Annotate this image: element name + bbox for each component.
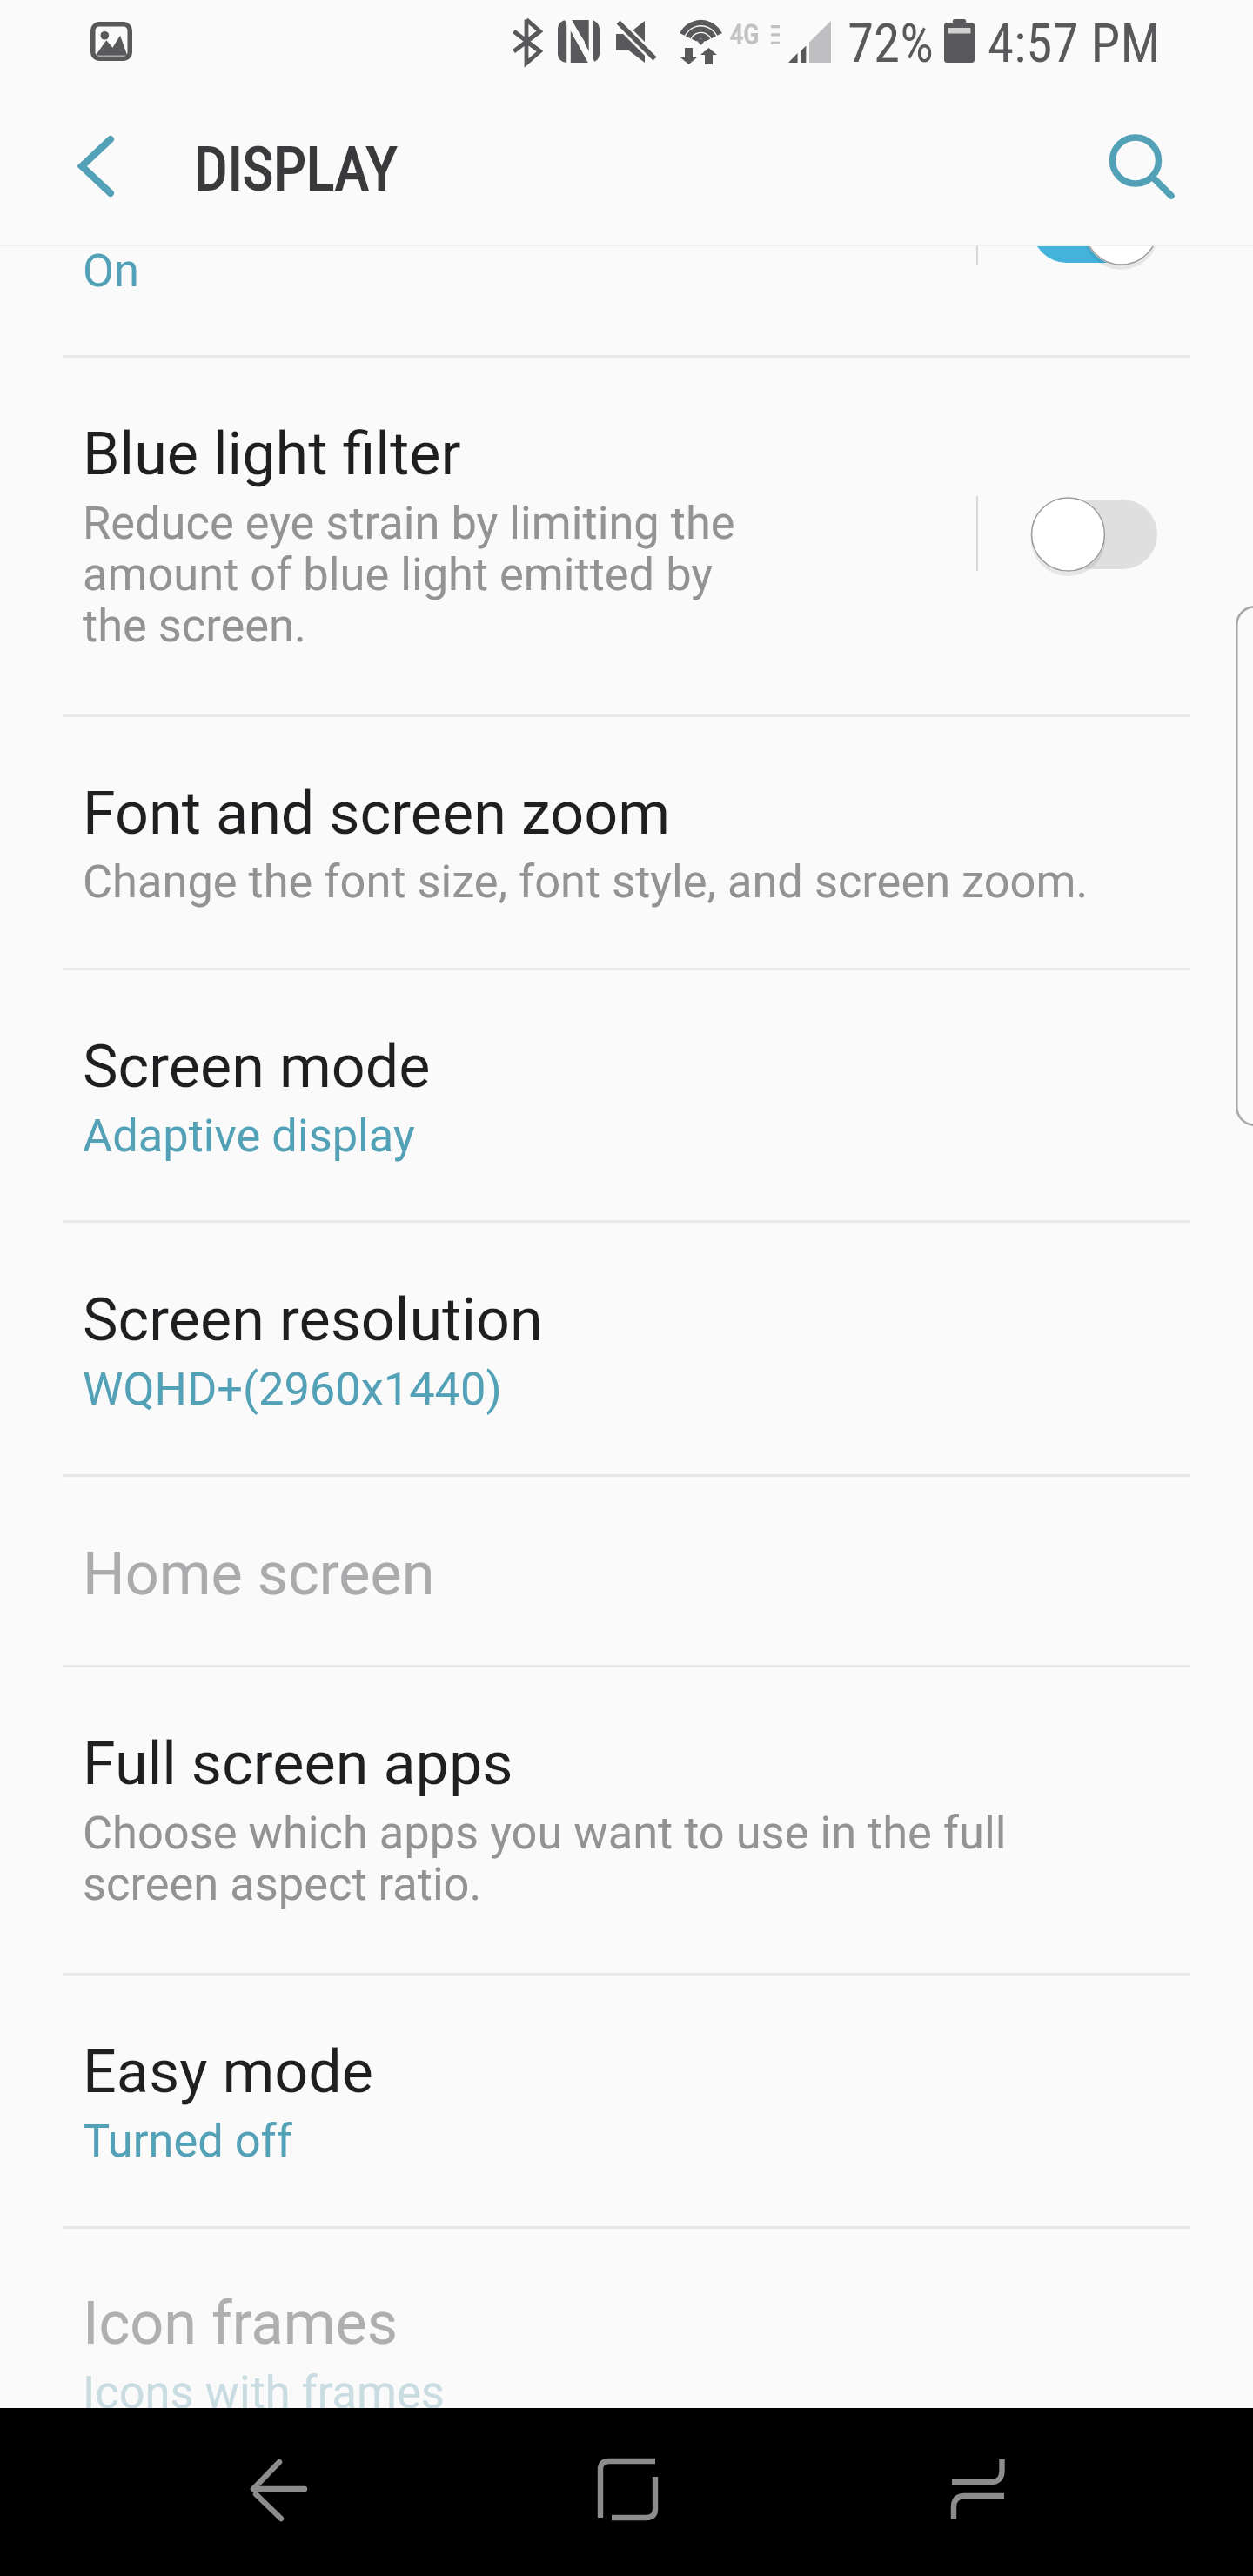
staticText: 4:57 PM xyxy=(988,12,1161,74)
staticText: 4G xyxy=(730,18,760,50)
staticText: Font and screen zoom xyxy=(83,779,671,849)
button[interactable] xyxy=(0,714,1253,968)
staticText: Easy mode xyxy=(83,2037,374,2107)
button[interactable] xyxy=(0,1220,1253,1474)
staticText: Icon frames xyxy=(83,2289,398,2358)
staticText: Turned off xyxy=(83,2114,293,2167)
button[interactable]: Back xyxy=(218,2408,339,2576)
staticText: amount of blue light emitted by xyxy=(83,547,714,600)
staticText: Icons with frames xyxy=(83,2365,445,2418)
button[interactable] xyxy=(0,355,1253,714)
button[interactable] xyxy=(0,2226,1253,2408)
staticText: screen aspect ratio. xyxy=(83,1857,482,1910)
button[interactable]: Recent apps xyxy=(917,2408,1039,2576)
staticText: Change the font size, font style, and sc… xyxy=(83,855,1089,908)
button[interactable] xyxy=(0,246,1253,355)
button[interactable]: Search xyxy=(1088,125,1192,230)
button[interactable] xyxy=(0,1665,1253,1973)
button[interactable] xyxy=(0,968,1253,1220)
staticText: 72% xyxy=(848,12,934,74)
staticText: Adaptive display xyxy=(83,1109,415,1162)
staticText: Screen resolution xyxy=(83,1285,543,1355)
button[interactable]: Blue light filter switch xyxy=(1029,494,1164,574)
staticText: Choose which apps you want to use in the… xyxy=(83,1806,1007,1859)
button[interactable]: Night mode switch xyxy=(1029,188,1164,268)
staticText: Blue light filter xyxy=(83,419,461,489)
button[interactable]: Navigate up xyxy=(40,125,144,230)
staticText: Full screen apps xyxy=(83,1729,513,1799)
staticText: WQHD+(2960x1440) xyxy=(83,1362,502,1415)
staticText: Screen mode xyxy=(83,1032,431,1102)
button[interactable] xyxy=(0,1973,1253,2226)
staticText: the screen. xyxy=(83,599,306,652)
staticText: Home screen xyxy=(83,1540,435,1609)
staticText: On xyxy=(83,244,139,297)
staticText: Reduce eye strain by limiting the xyxy=(83,496,735,549)
button[interactable]: Home xyxy=(567,2408,689,2576)
staticText: DISPLAY xyxy=(194,135,398,205)
